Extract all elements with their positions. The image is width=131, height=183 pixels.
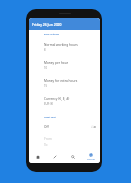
button[interactable]: Edit	[46, 149, 64, 163]
staticText: Money for extra hours	[44, 79, 78, 83]
button[interactable]: Off	[29, 121, 100, 132]
button[interactable]: Friday 26 Jun 2020	[29, 18, 100, 30]
staticText: Normal working hours	[44, 43, 78, 47]
staticText: Night shift	[44, 116, 56, 119]
staticText: 15	[44, 84, 48, 88]
staticText: Off	[44, 125, 91, 129]
staticText: 10	[44, 66, 48, 70]
button[interactable]: To	[29, 142, 100, 148]
staticText: Settings	[87, 158, 95, 161]
staticText: Basic settings	[44, 33, 60, 36]
staticText: To	[44, 143, 48, 147]
staticText: Friday 26 Jun 2020	[32, 22, 62, 27]
staticText: Money per hour	[44, 61, 69, 65]
button[interactable]: From	[29, 136, 100, 142]
button[interactable]: Money for extra hours	[29, 74, 100, 92]
staticText: Currency (€, $, #)	[44, 97, 70, 101]
staticText: From	[44, 137, 52, 141]
button[interactable]: Settings	[82, 149, 100, 163]
button[interactable]: Money per hour	[29, 56, 100, 74]
button[interactable]: Search	[64, 149, 82, 163]
button[interactable]: Home	[29, 149, 46, 163]
staticText: EUR (€)	[44, 102, 53, 106]
button[interactable]: Currency (€, $, #)	[29, 92, 100, 110]
button[interactable]: Normal working hours	[29, 38, 100, 56]
staticText: 8	[44, 48, 46, 52]
